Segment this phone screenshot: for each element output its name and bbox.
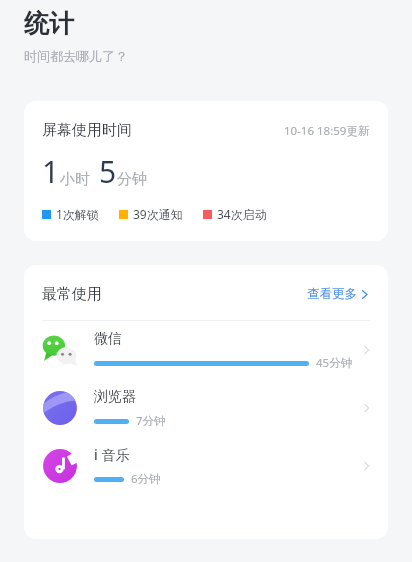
staticText: 1 bbox=[42, 151, 60, 192]
button[interactable]: i 音乐 bbox=[24, 437, 388, 495]
other: Details bbox=[363, 344, 370, 356]
staticText: 6分钟 bbox=[131, 471, 161, 487]
staticText: 最常使用 bbox=[42, 285, 102, 304]
staticText: 微信 bbox=[94, 330, 122, 348]
staticText: 分钟 bbox=[117, 170, 147, 189]
staticText: 浏览器 bbox=[94, 388, 136, 406]
other: Details bbox=[363, 402, 370, 414]
button[interactable]: 屏幕使用时间 bbox=[24, 101, 388, 241]
staticText: 7分钟 bbox=[136, 413, 166, 429]
staticText: 屏幕使用时间 bbox=[42, 121, 132, 140]
button[interactable]: 微信 bbox=[24, 321, 388, 379]
other: Details bbox=[363, 460, 370, 472]
staticText: 39次通知 bbox=[133, 206, 183, 222]
button[interactable]: 浏览器 bbox=[24, 379, 388, 437]
button[interactable]: 查看更多 bbox=[305, 283, 370, 305]
staticText: 45分钟 bbox=[316, 355, 353, 371]
staticText: 10-16 18:59更新 bbox=[284, 123, 370, 139]
staticText: 统计 bbox=[24, 8, 74, 39]
staticText: 时间都去哪儿了？ bbox=[24, 48, 128, 64]
staticText: i 音乐 bbox=[94, 445, 130, 464]
staticText: 1次解锁 bbox=[56, 206, 99, 222]
staticText: 查看更多 bbox=[307, 286, 357, 302]
staticText: 5 bbox=[99, 151, 117, 192]
staticText: 34次启动 bbox=[217, 206, 267, 222]
staticText: 小时 bbox=[60, 170, 90, 189]
